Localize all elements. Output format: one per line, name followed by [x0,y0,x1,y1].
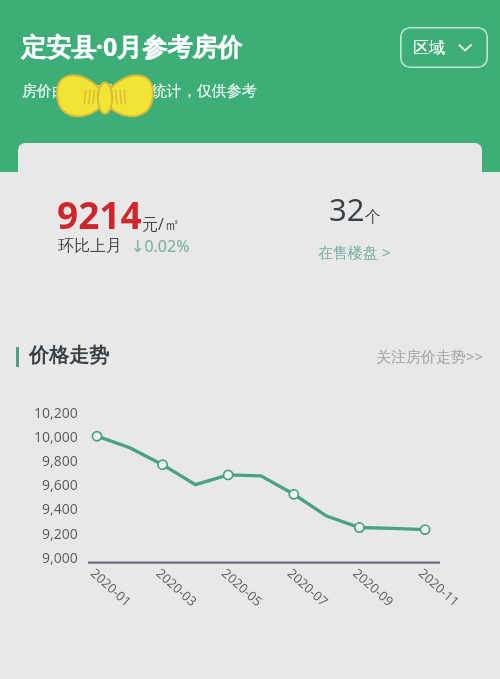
staticText: ↓0.02% [131,235,190,257]
staticText: 价格走势 [29,343,109,368]
button[interactable]: 区域 [400,27,488,68]
staticText: 房价由***智能算法统计，仅供参考 [22,80,257,100]
staticText: 定安县·0月参考房价 [21,29,243,63]
staticText: 环比上月 [58,236,122,256]
staticText: 元/㎡ [142,213,180,235]
staticText: 32 [329,188,365,230]
staticText: 区域 [413,38,445,58]
staticText: 个 [365,207,381,227]
button[interactable]: 32 [318,188,391,262]
staticText: 关注房价走势>> [376,346,484,366]
staticText: 在售楼盘 > [318,242,391,262]
button[interactable]: 关注房价走势>> [376,346,484,366]
staticText: 9214 [57,189,142,239]
